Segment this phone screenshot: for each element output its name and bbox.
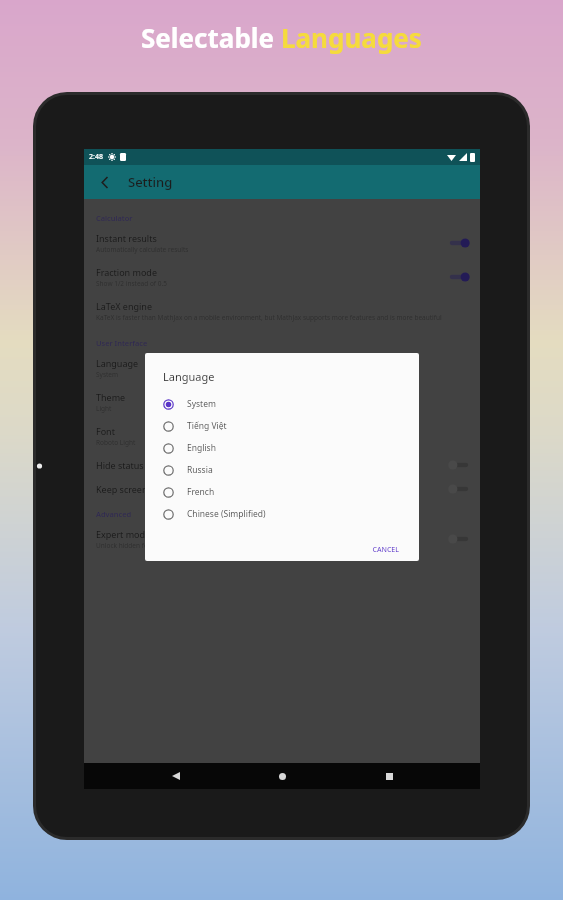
button[interactable]: English [163,437,405,459]
staticText: System [96,370,119,379]
staticText: English [187,442,216,454]
staticText: Languages [281,20,422,55]
button[interactable]: System [163,393,405,415]
staticText: Expert mode [96,528,151,540]
staticText: Font [96,425,115,437]
staticText: Language [163,369,215,384]
staticText: User Interface [96,338,148,348]
staticText: System [187,398,216,410]
button[interactable]: Instant results [84,226,480,260]
button[interactable]: Tiếng Việt [163,415,405,437]
staticText: Keep screen on [96,483,161,495]
button[interactable]: Language [84,351,480,385]
staticText: Setting [128,173,173,191]
staticText: Chinese (Simplified) [187,508,266,520]
button[interactable] [448,271,470,283]
staticText: Theme [96,391,126,403]
button[interactable]: Chinese (Simplified) [163,503,405,525]
button[interactable] [448,237,470,249]
staticText: Automatically calculate results [96,245,189,254]
button[interactable]: Hide status bar [84,453,480,477]
staticText: LaTeX engine [96,300,152,312]
staticText: Advanced [96,509,132,519]
staticText: CANCEL [372,545,399,555]
button[interactable] [448,483,470,495]
button[interactable] [448,533,470,545]
button[interactable]: Back [92,169,118,195]
button[interactable] [448,459,470,471]
staticText: Instant results [96,232,157,244]
staticText: Russia [187,464,213,476]
staticText: Unlock hidden features [96,541,167,550]
button[interactable]: Back [161,763,191,789]
staticText: Fraction mode [96,266,157,278]
staticText: Light [96,404,112,413]
button[interactable]: CANCEL [366,541,405,559]
button[interactable]: Keep screen on [84,477,480,501]
staticText: Tiếng Việt [187,420,227,432]
staticText: Hide status bar [96,459,161,471]
staticText: French [187,486,215,498]
button[interactable]: Recents [374,763,404,789]
staticText: Show 1/2 instead of 0.5 [96,279,167,288]
staticText: Roboto Light [96,438,136,447]
button[interactable]: French [163,481,405,503]
button[interactable]: Theme [84,385,480,419]
staticText: Selectable [141,20,281,55]
staticText: Calculator [96,213,133,223]
button[interactable]: Russia [163,459,405,481]
button[interactable]: Fraction mode [84,260,480,294]
button[interactable]: Expert mode [84,522,480,556]
staticText: Language [96,357,139,369]
staticText: KaTeX is faster than MathJax on a mobile… [96,313,442,322]
button[interactable]: Home [267,763,297,789]
button[interactable]: Font [84,419,480,453]
staticText: 2:48 [89,152,103,162]
button[interactable]: LaTeX engine [84,294,480,328]
